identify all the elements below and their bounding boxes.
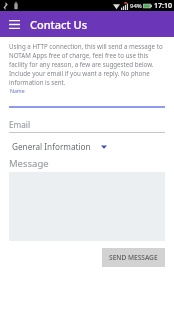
staticText: General Information [12,141,91,152]
staticText: Using a HTTP connection, this will send … [9,42,165,87]
button[interactable]: Email [9,119,165,133]
staticText: SEND MESSAGE [109,253,158,262]
staticText: Contact Us [30,17,88,32]
button[interactable]: General Information [9,140,107,153]
other: Expand category [101,145,107,149]
button[interactable]: Name [9,87,165,108]
staticText: Message [9,157,49,170]
staticText: 17:10 [154,1,172,11]
button[interactable]: Open navigation drawer [4,14,24,34]
staticText: Name [10,87,25,94]
staticText: Email [9,119,31,130]
button[interactable]: SEND MESSAGE [102,248,165,267]
staticText: 94% [130,2,142,10]
